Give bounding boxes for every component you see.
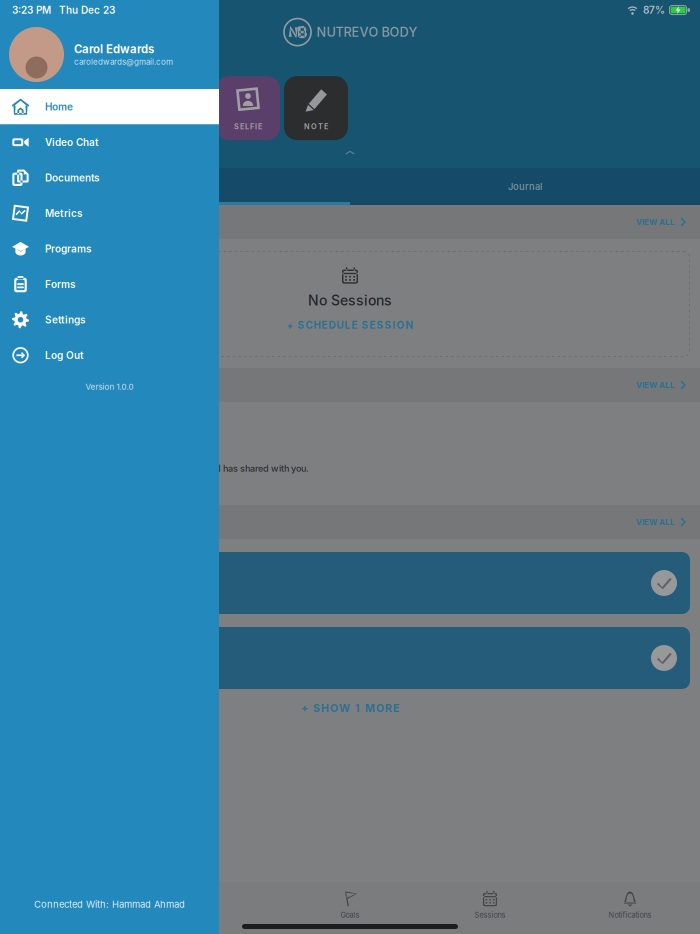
staticText: Version 1.0.0 (85, 382, 133, 392)
staticText: Sessions (474, 911, 505, 919)
staticText: Log Out (45, 349, 84, 361)
staticText: No Sessions (308, 292, 392, 309)
staticText: Notifications (608, 911, 651, 919)
button[interactable]: Video Chat (0, 124, 219, 160)
staticText: Video Chat (45, 136, 99, 148)
staticText: Home (45, 101, 73, 113)
staticText: VIEW ALL (636, 517, 675, 527)
button[interactable]: Log Out (0, 337, 219, 373)
staticText: M E A L (100, 122, 123, 131)
staticText: Forms (45, 278, 75, 290)
staticText: VIEW ALL (636, 380, 675, 390)
staticText: Connected With: Hammad Ahmad (34, 899, 185, 910)
staticText: 3:23 PM (12, 4, 51, 16)
staticText: 87% (643, 4, 665, 16)
button[interactable]: VIEW ALL (636, 374, 686, 396)
button[interactable]: Home (0, 89, 219, 124)
staticText: S E L F I E (234, 122, 262, 131)
staticText: Metrics (45, 207, 82, 219)
button[interactable]: Goals (280, 886, 420, 924)
staticText: Documents (45, 172, 99, 184)
button[interactable]: Metrics (0, 195, 219, 231)
button[interactable]: Settings (0, 302, 219, 337)
staticText: Goals (340, 911, 359, 919)
button[interactable]: Programs (0, 231, 219, 266)
staticText: S E S S I O N S (14, 215, 74, 228)
button[interactable]: Journal (350, 168, 700, 205)
button[interactable]: N O T E (284, 76, 348, 140)
staticText: caroledwards@gmail.com (74, 57, 173, 67)
button[interactable]: M E A L (80, 76, 144, 140)
button[interactable]: W A T E R (148, 76, 212, 140)
button[interactable]: Collapse (342, 147, 357, 158)
staticText: + S H O W 1 M O R E (301, 701, 399, 714)
staticText: N O T E (304, 122, 328, 131)
button[interactable]: Notifications (560, 886, 700, 924)
staticText: VIEW ALL (636, 217, 675, 227)
button[interactable]: VIEW ALL (636, 211, 686, 233)
button[interactable]: VIEW ALL (636, 511, 686, 533)
staticText: D O C U M E N T S (14, 378, 92, 391)
button[interactable]: Diary (0, 168, 350, 205)
button[interactable]: Sessions (420, 886, 560, 924)
button[interactable]: + S C H E D U L E S E S S I O N (286, 309, 413, 331)
staticText: Carol Edwards (74, 42, 154, 56)
staticText: W A T E R (165, 122, 195, 131)
staticText: W E I G H T (27, 122, 60, 131)
button[interactable]: W E I G H T (12, 76, 76, 140)
staticText: Journal (508, 181, 542, 192)
button[interactable]: Home (0, 886, 140, 924)
staticText: NUTREVO BODY (316, 24, 417, 40)
button[interactable]: Drink 2 litres of water every day (10, 552, 690, 614)
staticText: Thu Dec 23 (59, 4, 115, 16)
staticText: Settings (45, 314, 85, 326)
button[interactable]: Forms (0, 266, 219, 302)
staticText: + S C H E D U L E S E S S I O N (286, 319, 413, 331)
button[interactable]: Diary (140, 886, 280, 924)
button[interactable]: Documents (0, 160, 219, 195)
staticText: Programs (45, 243, 91, 255)
staticText: Nutrition-Plan-Dec-2021.pdf — Hammad Ahm… (14, 463, 309, 474)
button[interactable]: Walk 10,000 steps (10, 627, 690, 689)
button[interactable]: S E L F I E (216, 76, 280, 140)
button[interactable]: + S H O W 1 M O R E (301, 689, 399, 727)
